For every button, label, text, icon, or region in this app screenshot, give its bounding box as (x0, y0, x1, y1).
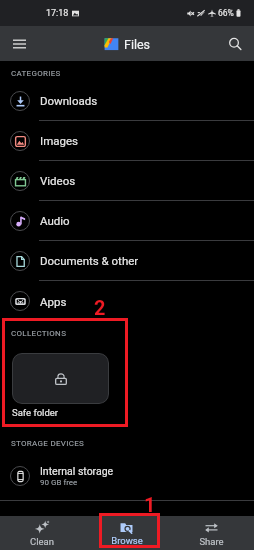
staticText: Audio (40, 214, 70, 227)
staticText: Clean (30, 536, 54, 547)
button[interactable]: Clean (0, 519, 84, 547)
staticText: 66% (218, 8, 234, 18)
staticText: 1 (144, 493, 156, 516)
button[interactable]: Audio (0, 201, 254, 241)
staticText: Videos (40, 174, 76, 187)
button[interactable]: Browse (84, 521, 169, 546)
button[interactable]: Videos (0, 161, 254, 201)
button[interactable]: Internal storage (0, 456, 254, 496)
staticText: Share (199, 536, 224, 547)
staticText: 90 GB free (40, 478, 78, 487)
staticText: CATEGORIES (11, 69, 61, 78)
staticText: Files (124, 37, 151, 52)
staticText: Safe folder (12, 407, 59, 418)
button[interactable] (12, 353, 109, 404)
staticText: Apps (40, 295, 67, 308)
staticText: Internal storage (40, 465, 114, 477)
staticText: Images (40, 134, 78, 147)
staticText: STORAGE DEVICES (11, 439, 85, 448)
button[interactable]: Documents & other (0, 241, 254, 281)
staticText: 2 (94, 296, 106, 319)
staticText: Documents & other (40, 254, 139, 267)
button[interactable]: Images (0, 121, 254, 161)
button[interactable]: Apps (0, 281, 254, 321)
staticText: COLLECTIONS (11, 329, 67, 338)
button[interactable]: Downloads (0, 81, 254, 121)
button[interactable]: Search (220, 29, 250, 59)
button[interactable]: Open navigation drawer (4, 29, 34, 59)
staticText: Downloads (40, 94, 98, 107)
button[interactable]: Share (169, 520, 254, 547)
staticText: 17:18 (46, 8, 69, 19)
staticText: Browse (111, 535, 143, 546)
